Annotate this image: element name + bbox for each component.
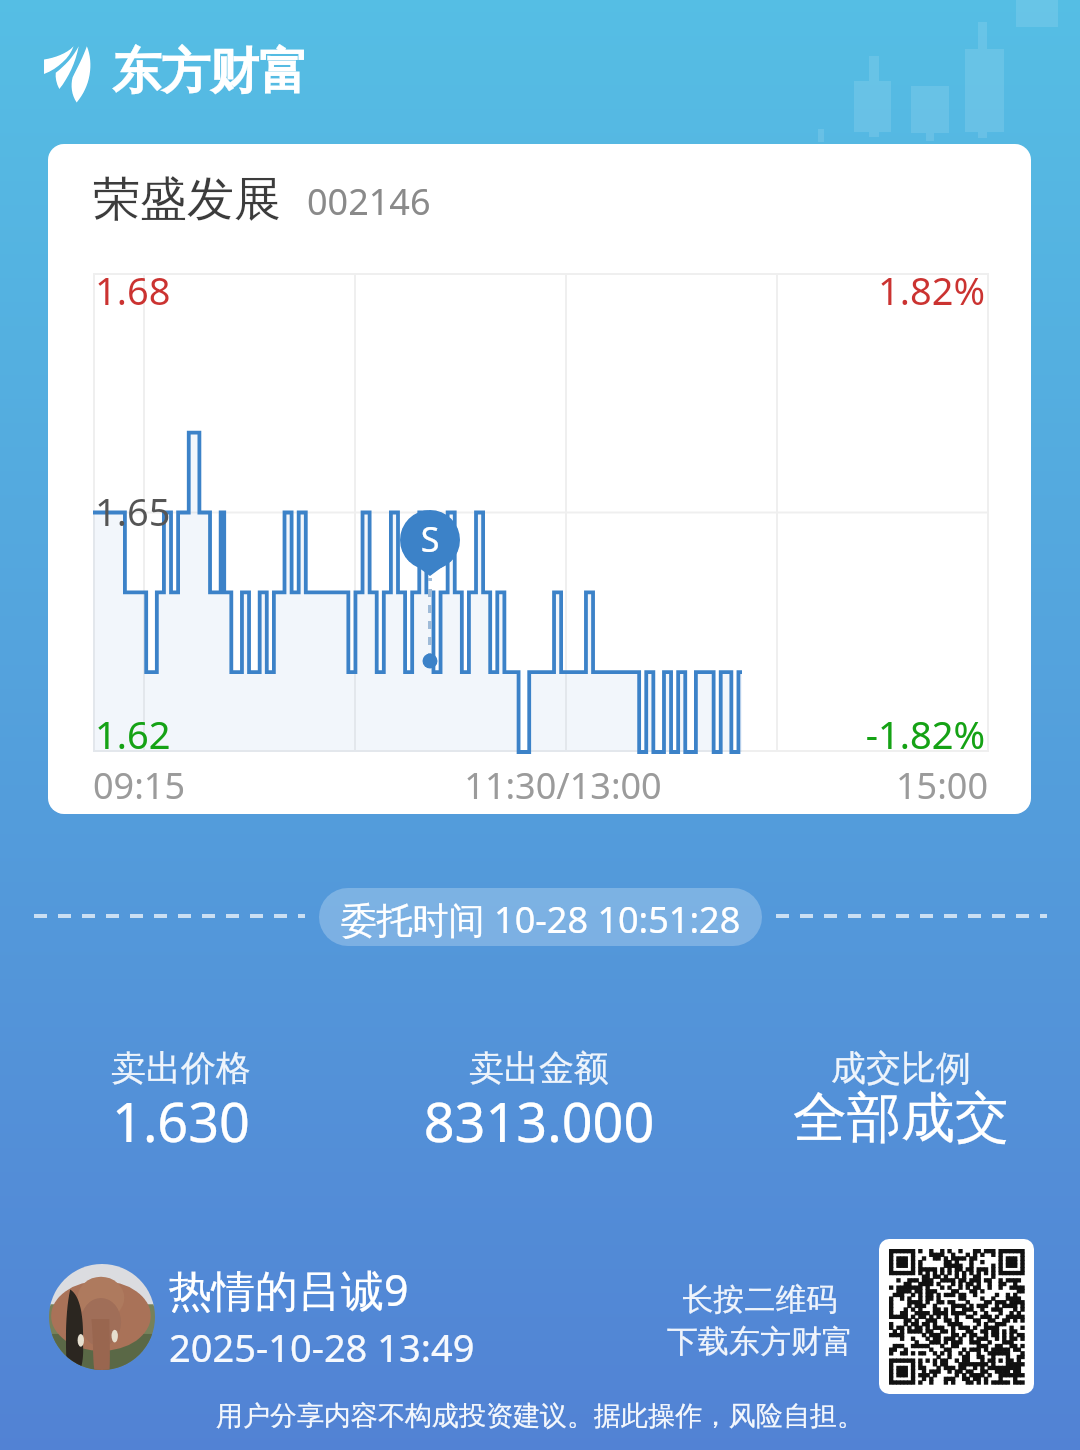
staticText: 全部成交 [721, 1084, 1080, 1152]
staticText: 荣盛发展 [93, 170, 281, 229]
staticText: -1.82% [685, 708, 985, 760]
staticText: 09:15 [93, 761, 186, 810]
staticText: 1.65 [95, 485, 171, 537]
other: 用户头像 [49, 1264, 155, 1370]
staticText: 用户分享内容不构成投资建议。据此操作，风险自担。 [0, 1399, 1080, 1433]
staticText: 8313.000 [359, 1084, 719, 1158]
staticText: 11:30/13:00 [363, 761, 763, 810]
button[interactable]: 用户头像 [49, 1260, 475, 1373]
staticText: 热情的吕诚9 [169, 1260, 409, 1319]
button[interactable]: 成交比例 [721, 1046, 1080, 1158]
button[interactable]: 二维码 [879, 1239, 1034, 1394]
staticText: 1.82% [685, 264, 985, 316]
button[interactable]: 东方财富 [43, 41, 308, 106]
button[interactable]: 卖出金额 [359, 1046, 719, 1164]
staticText: 下载东方财富 [640, 1322, 880, 1361]
button[interactable]: 委托时间 10-28 10:51:28 [319, 888, 762, 946]
staticText: 卖出金额 [359, 1046, 719, 1090]
staticText: 卖出价格 [1, 1046, 361, 1090]
staticText: S [400, 516, 460, 562]
button[interactable]: 卖出价格 [1, 1046, 361, 1164]
staticText: 002146 [307, 177, 431, 226]
button[interactable]: 荣盛发展 [48, 144, 1031, 814]
staticText: 1.630 [1, 1084, 361, 1158]
staticText: 成交比例 [721, 1046, 1080, 1090]
staticText: 15:00 [93, 761, 988, 810]
staticText: 1.62 [95, 708, 171, 760]
staticText: 委托时间 10-28 10:51:28 [319, 895, 762, 944]
staticText: 东方财富 [112, 41, 308, 103]
staticText: 1.68 [95, 264, 171, 316]
staticText: 2025-10-28 13:49 [169, 1321, 475, 1373]
staticText: 长按二维码 [640, 1280, 880, 1319]
